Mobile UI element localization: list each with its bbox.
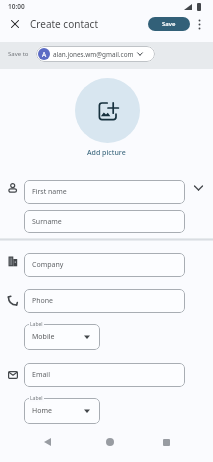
staticText: A xyxy=(42,50,47,59)
button[interactable]: Add picture xyxy=(87,148,126,158)
button[interactable] xyxy=(38,433,56,451)
staticText: Create contact xyxy=(30,17,99,31)
button[interactable]: Email xyxy=(24,363,185,387)
staticText: alan.jones.wm@gmail.com xyxy=(53,50,134,59)
button[interactable]: Home xyxy=(24,398,100,424)
button[interactable]: Company xyxy=(24,253,185,277)
button[interactable] xyxy=(192,16,206,32)
staticText: Home xyxy=(32,406,52,416)
staticText: First name xyxy=(32,187,67,197)
button[interactable]: Mobile xyxy=(24,324,100,350)
button[interactable] xyxy=(101,433,119,451)
button[interactable]: Save xyxy=(148,17,190,31)
staticText: 10:00 xyxy=(8,2,25,11)
staticText: Save xyxy=(162,20,176,28)
staticText: Email xyxy=(32,370,50,380)
button[interactable] xyxy=(75,78,140,143)
button[interactable]: Phone xyxy=(24,289,185,313)
button[interactable]: Surname xyxy=(24,210,185,233)
staticText: Company xyxy=(32,260,64,270)
button[interactable]: First name xyxy=(24,180,185,204)
staticText: Mobile xyxy=(32,332,55,342)
button[interactable]: A xyxy=(36,46,155,62)
button[interactable] xyxy=(190,179,207,196)
button[interactable] xyxy=(6,15,23,32)
staticText: Label xyxy=(30,321,43,328)
staticText: Save to xyxy=(8,50,29,58)
staticText: Phone xyxy=(32,296,54,306)
staticText: Label xyxy=(30,395,43,402)
staticText: Surname xyxy=(32,217,62,227)
button[interactable] xyxy=(157,433,175,451)
